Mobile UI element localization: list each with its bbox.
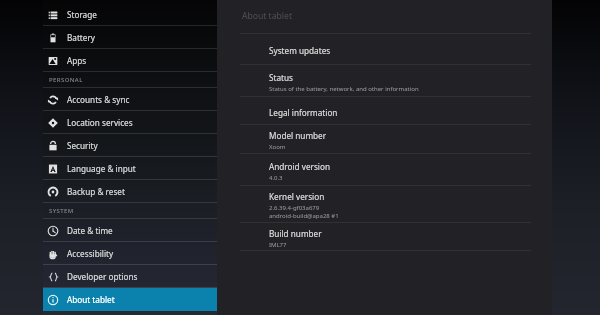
staticText: About tablet — [242, 10, 292, 22]
staticText: About tablet — [67, 294, 115, 305]
button[interactable]: Apps — [43, 49, 217, 72]
button[interactable]: Location services — [43, 111, 217, 134]
staticText: Android version — [269, 161, 330, 172]
button[interactable]: Backup & reset — [43, 180, 217, 203]
button[interactable]: Accounts & sync — [43, 88, 217, 111]
staticText: Backup & reset — [67, 186, 125, 197]
staticText: Apps — [67, 55, 87, 66]
staticText: Status — [269, 72, 293, 83]
staticText: Xoom — [269, 143, 286, 151]
staticText: Legal information — [269, 107, 338, 118]
button[interactable]: Android version — [217, 154, 552, 186]
button[interactable]: Model number — [217, 125, 552, 154]
staticText: PERSONAL — [49, 76, 83, 84]
staticText: Accounts & sync — [67, 94, 130, 105]
button[interactable]: Legal information — [217, 97, 552, 125]
button[interactable]: Kernel version — [217, 186, 552, 223]
button[interactable]: Storage — [43, 3, 217, 26]
staticText: 4.0.3 — [269, 174, 283, 182]
button[interactable]: Language & input — [43, 157, 217, 180]
button[interactable]: Developer options — [43, 265, 217, 288]
staticText: Model number — [269, 130, 327, 141]
staticText: Build number — [269, 228, 322, 239]
button[interactable]: Status — [217, 65, 552, 97]
staticText: Status of the battery, network, and othe… — [269, 85, 419, 93]
staticText: IML77 — [269, 241, 287, 249]
button[interactable]: Date & time — [43, 219, 217, 242]
button[interactable]: System updates — [217, 34, 552, 65]
staticText: 2.6.39.4-gf03a679 android-build@apa28 #1 — [269, 204, 339, 220]
staticText: Storage — [67, 9, 97, 20]
staticText: Date & time — [67, 225, 113, 236]
button[interactable]: About tablet — [43, 288, 217, 311]
staticText: Location services — [67, 117, 133, 128]
button[interactable]: Security — [43, 134, 217, 157]
staticText: Battery — [67, 32, 96, 43]
staticText: System updates — [269, 45, 331, 56]
button[interactable]: Build number — [217, 223, 552, 251]
button[interactable]: Accessibility — [43, 242, 217, 265]
staticText: SYSTEM — [49, 207, 74, 215]
staticText: Kernel version — [269, 191, 325, 202]
staticText: Developer options — [67, 271, 138, 282]
staticText: Accessibility — [67, 248, 114, 259]
button[interactable]: Battery — [43, 26, 217, 49]
staticText: Language & input — [67, 163, 136, 174]
staticText: Security — [67, 140, 98, 151]
